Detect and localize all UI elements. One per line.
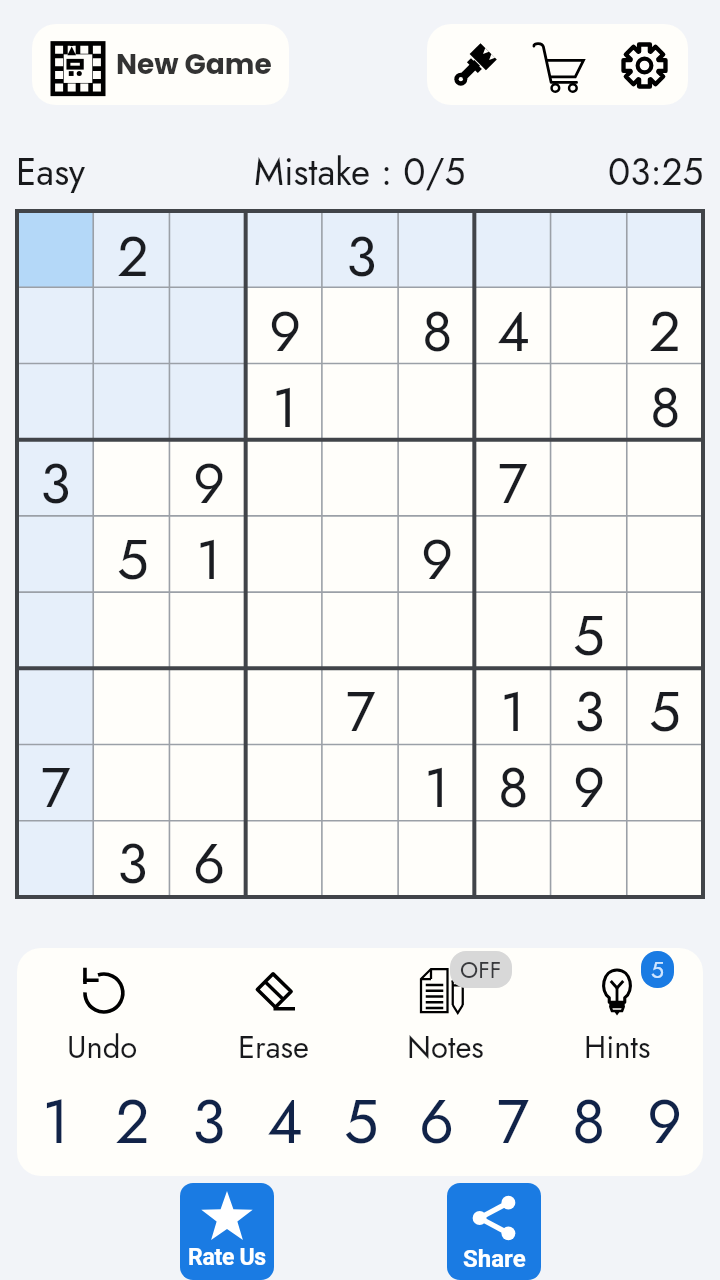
button[interactable]: OFF (359, 948, 531, 1063)
button[interactable] (17, 367, 94, 443)
button[interactable] (627, 595, 703, 671)
button[interactable] (551, 443, 627, 519)
button[interactable] (171, 595, 247, 671)
button[interactable]: 8 (475, 747, 551, 823)
button[interactable]: 6 (399, 1078, 475, 1156)
button[interactable] (323, 519, 399, 595)
button[interactable] (475, 519, 551, 595)
button[interactable]: 5 (323, 1078, 399, 1156)
button[interactable] (475, 367, 551, 443)
button[interactable] (247, 671, 323, 747)
button[interactable]: 2 (627, 291, 703, 367)
button[interactable]: 1 (247, 367, 323, 443)
button[interactable] (399, 671, 475, 747)
button[interactable]: 3 (94, 823, 171, 899)
button[interactable]: 9 (171, 443, 247, 519)
button[interactable] (247, 519, 323, 595)
button[interactable] (551, 367, 627, 443)
button[interactable] (171, 747, 247, 823)
button[interactable]: 4 (247, 1078, 323, 1156)
button[interactable] (17, 216, 94, 291)
button[interactable]: 3 (323, 216, 399, 291)
button[interactable] (627, 519, 703, 595)
button[interactable] (399, 823, 475, 899)
button[interactable] (323, 823, 399, 899)
button[interactable] (247, 823, 323, 899)
button[interactable]: 9 (627, 1078, 703, 1156)
button[interactable] (94, 671, 171, 747)
button[interactable] (171, 291, 247, 367)
button[interactable]: 5 (94, 519, 171, 595)
button[interactable] (323, 367, 399, 443)
button[interactable] (94, 291, 171, 367)
button[interactable]: 1 (475, 671, 551, 747)
button[interactable]: 3 (551, 671, 627, 747)
button[interactable]: 9 (247, 291, 323, 367)
button[interactable]: Settings (601, 24, 688, 105)
button[interactable] (475, 595, 551, 671)
button[interactable]: Undo (17, 948, 188, 1063)
button[interactable] (399, 216, 475, 291)
button[interactable] (323, 291, 399, 367)
button[interactable] (551, 291, 627, 367)
button[interactable] (17, 519, 94, 595)
button[interactable]: 5 (627, 671, 703, 747)
button[interactable] (399, 367, 475, 443)
button[interactable]: 3 (171, 1078, 247, 1156)
button[interactable] (627, 216, 703, 291)
button[interactable]: 4 (475, 291, 551, 367)
button[interactable] (17, 595, 94, 671)
button[interactable]: 7 (475, 443, 551, 519)
button[interactable] (94, 367, 171, 443)
button[interactable]: 6 (171, 823, 247, 899)
button[interactable] (247, 595, 323, 671)
button[interactable] (171, 216, 247, 291)
button[interactable]: 9 (399, 519, 475, 595)
button[interactable] (627, 747, 703, 823)
button[interactable]: 2 (94, 216, 171, 291)
button[interactable] (627, 443, 703, 519)
button[interactable]: 1 (171, 519, 247, 595)
button[interactable] (17, 823, 94, 899)
button[interactable] (627, 823, 703, 899)
button[interactable] (323, 747, 399, 823)
button[interactable] (247, 747, 323, 823)
button[interactable] (551, 216, 627, 291)
button[interactable]: Rate Us (180, 1183, 274, 1280)
button[interactable]: 3 (17, 443, 94, 519)
button[interactable] (171, 367, 247, 443)
button[interactable]: 7 (323, 671, 399, 747)
button[interactable]: 8 (399, 291, 475, 367)
button[interactable] (399, 595, 475, 671)
button[interactable]: New Game (32, 24, 289, 105)
button[interactable] (94, 747, 171, 823)
button[interactable] (551, 519, 627, 595)
button[interactable]: Shop (514, 24, 601, 105)
button[interactable]: 1 (399, 747, 475, 823)
button[interactable] (17, 671, 94, 747)
button[interactable]: 7 (17, 747, 94, 823)
button[interactable] (399, 443, 475, 519)
button[interactable]: 8 (627, 367, 703, 443)
button[interactable] (475, 216, 551, 291)
button[interactable] (551, 823, 627, 899)
button[interactable]: 5 (531, 948, 703, 1063)
button[interactable] (475, 823, 551, 899)
button[interactable]: 9 (551, 747, 627, 823)
button[interactable] (94, 443, 171, 519)
button[interactable]: Theme (427, 24, 514, 105)
button[interactable] (323, 595, 399, 671)
button[interactable]: 5 (551, 595, 627, 671)
button[interactable]: 7 (475, 1078, 551, 1156)
button[interactable]: 1 (17, 1078, 94, 1156)
button[interactable]: 8 (551, 1078, 627, 1156)
button[interactable]: 2 (94, 1078, 171, 1156)
button[interactable] (247, 216, 323, 291)
button[interactable] (247, 443, 323, 519)
button[interactable] (171, 671, 247, 747)
button[interactable]: Share (447, 1183, 541, 1280)
button[interactable]: Erase (188, 948, 359, 1063)
button[interactable] (17, 291, 94, 367)
button[interactable] (94, 595, 171, 671)
button[interactable] (323, 443, 399, 519)
